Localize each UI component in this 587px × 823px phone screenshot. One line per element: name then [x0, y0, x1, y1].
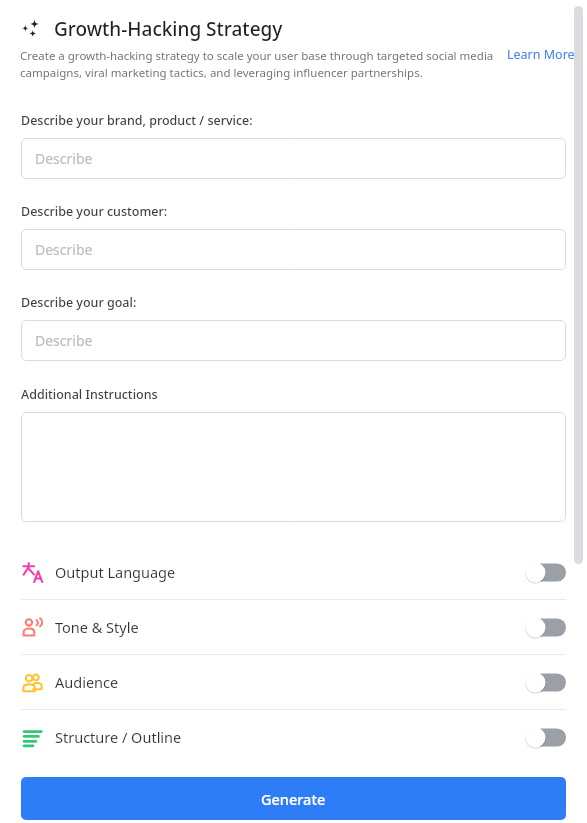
staticText: Describe your brand, product / service: [21, 112, 253, 129]
button[interactable]: Describe [21, 320, 566, 361]
button[interactable]: Output Language [0, 545, 587, 599]
button[interactable]: Structure / Outline [0, 710, 587, 764]
staticText: Structure / Outline [55, 727, 182, 747]
staticText: Describe [35, 331, 93, 350]
staticText: Create a growth-hacking strategy to scal… [20, 48, 505, 80]
staticText: Output Language [55, 562, 176, 582]
staticText: Audience [55, 672, 119, 692]
button[interactable]: Describe [21, 138, 566, 179]
staticText: Tone & Style [55, 617, 139, 637]
staticText: Describe [35, 240, 93, 259]
button[interactable]: Toggle [525, 672, 566, 693]
staticText: Growth-Hacking Strategy [54, 16, 283, 42]
button[interactable]: Toggle [525, 727, 566, 748]
button[interactable] [21, 412, 566, 522]
button[interactable]: Learn More [505, 44, 577, 65]
staticText: Describe your goal: [21, 294, 137, 311]
staticText: Additional Instructions [21, 386, 158, 403]
staticText: Generate [261, 789, 326, 809]
button[interactable]: Generate [21, 777, 566, 820]
button[interactable]: Toggle [525, 562, 566, 583]
button[interactable]: Toggle [525, 617, 566, 638]
staticText: Describe your customer: [21, 203, 168, 220]
button[interactable]: Audience [0, 655, 587, 709]
button[interactable]: Tone & Style [0, 600, 587, 654]
staticText: Learn More [507, 46, 575, 63]
staticText: Describe [35, 149, 93, 168]
button[interactable]: Describe [21, 229, 566, 270]
